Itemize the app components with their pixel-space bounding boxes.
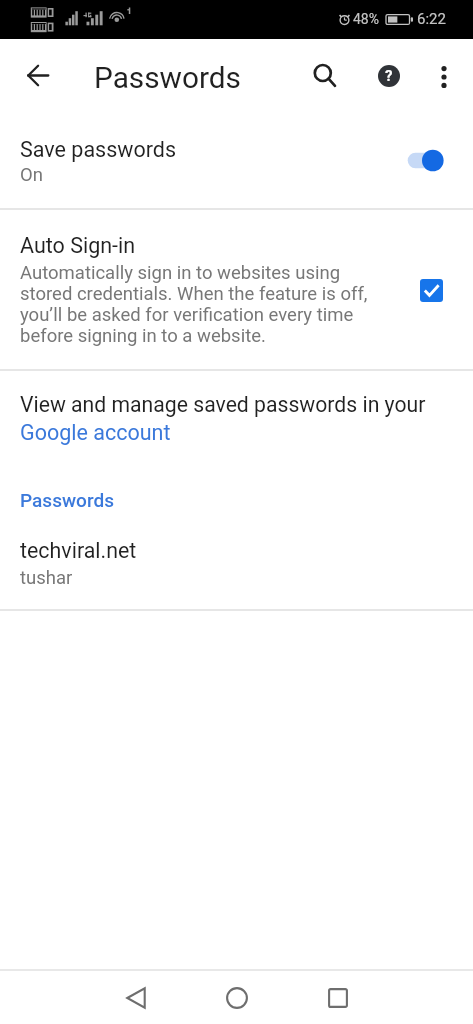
staticText: techviral.net xyxy=(20,538,137,563)
button[interactable]: More options xyxy=(421,54,467,100)
button[interactable]: Search xyxy=(303,54,349,100)
button[interactable]: Back xyxy=(106,971,166,1024)
button[interactable]: Home xyxy=(207,971,267,1024)
button[interactable]: Save passwords xyxy=(0,117,473,208)
staticText: On xyxy=(20,164,43,186)
button[interactable]: Save passwords toggle xyxy=(407,140,453,186)
staticText: 48% xyxy=(353,11,379,27)
staticText: Save passwords xyxy=(20,137,177,162)
staticText: ? xyxy=(385,67,393,85)
staticText: 6:22 xyxy=(417,10,446,28)
staticText: Passwords xyxy=(20,489,114,511)
button[interactable]: Auto Sign-in xyxy=(0,210,473,369)
staticText: Automatically sign in to websites using … xyxy=(20,262,376,346)
staticText: Auto Sign-in xyxy=(20,233,136,258)
button[interactable]: techviral.net xyxy=(0,519,473,609)
staticText: Passwords xyxy=(94,60,241,95)
staticText: tushar xyxy=(20,567,73,589)
staticText: Google account xyxy=(20,420,171,445)
button[interactable]: View and manage saved passwords in your xyxy=(0,371,473,463)
button[interactable]: Help xyxy=(366,53,412,99)
button[interactable]: Recent apps xyxy=(308,971,368,1024)
button[interactable]: Navigate up xyxy=(13,51,62,100)
staticText: View and manage saved passwords in your xyxy=(20,392,426,417)
